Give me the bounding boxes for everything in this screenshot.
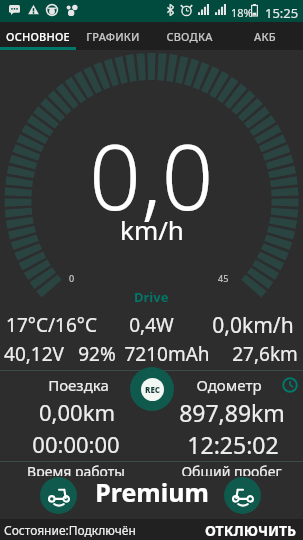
staticText: REC — [145, 384, 160, 395]
staticText: Drive — [134, 288, 169, 306]
staticText: 27,6km — [232, 341, 298, 367]
staticText: ОТКЛЮЧИТЬ — [205, 521, 297, 538]
staticText: 92% — [78, 341, 116, 367]
staticText: 7210mAh — [124, 341, 210, 367]
staticText: 40,12V — [4, 341, 64, 367]
staticText: 12:25:02 — [187, 429, 279, 457]
staticText: Поездка — [48, 375, 109, 395]
staticText: 0,0 — [89, 113, 214, 237]
staticText: 0,0km/h — [212, 311, 294, 339]
staticText: 00:00:00 — [32, 429, 120, 457]
button[interactable]: History — [280, 375, 300, 395]
staticText: Общий пробег — [181, 462, 282, 481]
staticText: 18% — [231, 5, 253, 20]
staticText: 17°C/16°C — [6, 312, 97, 338]
button[interactable]: Premium — [92, 475, 212, 507]
button[interactable]: Scooter left — [40, 477, 77, 514]
staticText: Состояние:Подключён — [4, 522, 136, 538]
staticText: Одометр — [196, 375, 262, 395]
staticText: Время работы — [27, 462, 125, 481]
staticText: 15:25 — [265, 4, 299, 22]
button[interactable]: ОСНОВНОЕ — [0, 22, 75, 50]
staticText: ГРАФИКИ — [86, 29, 140, 44]
staticText: ОСНОВНОЕ — [6, 29, 70, 44]
staticText: 45 — [218, 272, 229, 284]
button[interactable]: ОТКЛЮЧИТЬ — [203, 519, 299, 540]
button[interactable]: Scooter right — [224, 477, 261, 514]
button[interactable]: СВОДКА — [151, 22, 227, 50]
staticText: 0 — [69, 272, 75, 284]
staticText: 897,89km — [179, 397, 285, 425]
button[interactable]: Record trip — [130, 367, 174, 411]
button[interactable]: АКБ — [227, 22, 303, 50]
button[interactable]: ГРАФИКИ — [75, 22, 151, 50]
staticText: km/h — [120, 212, 184, 247]
staticText: 0,4W — [129, 312, 174, 338]
staticText: АКБ — [254, 29, 276, 44]
staticText: 0,00km — [39, 397, 115, 425]
staticText: СВОДКА — [166, 29, 213, 44]
staticText: Premium — [95, 475, 209, 507]
